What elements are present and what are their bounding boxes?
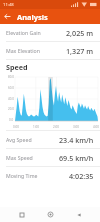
staticText: 2:00 — [53, 125, 59, 129]
button[interactable]: Elevation Gain — [0, 24, 100, 41]
staticText: 20.0 — [8, 107, 14, 111]
staticText: 2,025 m — [66, 28, 94, 38]
staticText: 1:00 — [33, 125, 39, 129]
staticText: 4:02:35 — [69, 171, 94, 181]
staticText: 0.0 — [9, 118, 14, 122]
staticText: Speed — [6, 62, 28, 72]
staticText: 3:00 — [73, 125, 79, 129]
staticText: 0:00 — [13, 125, 19, 129]
button[interactable]: Back — [71, 207, 86, 222]
staticText: 23.4 km/h — [59, 135, 94, 145]
staticText: Max Speed — [6, 154, 33, 161]
button[interactable]: Recents — [14, 207, 29, 222]
staticText: 80.0 — [8, 75, 14, 79]
button[interactable]: Home — [43, 207, 58, 222]
button[interactable]: Moving Time — [0, 167, 100, 184]
staticText: 11:48 — [3, 2, 14, 8]
staticText: 69.5 km/h — [59, 153, 94, 163]
staticText: Analysis — [17, 12, 48, 22]
button[interactable]: Max Elevation — [0, 42, 100, 59]
button[interactable]: Max Speed — [0, 149, 100, 166]
staticText: Avg Speed — [6, 136, 32, 143]
staticText: 60.0 — [8, 86, 14, 90]
button[interactable]: Avg Speed — [0, 131, 100, 148]
staticText: Elevation Gain — [6, 29, 41, 36]
button[interactable]: Back — [0, 9, 15, 24]
staticText: 1,327 m — [66, 46, 94, 56]
staticText: Moving Time — [6, 172, 38, 179]
staticText: 40.0 — [8, 97, 14, 101]
staticText: 4:00 — [93, 125, 99, 129]
staticText: Max Elevation — [6, 47, 40, 54]
